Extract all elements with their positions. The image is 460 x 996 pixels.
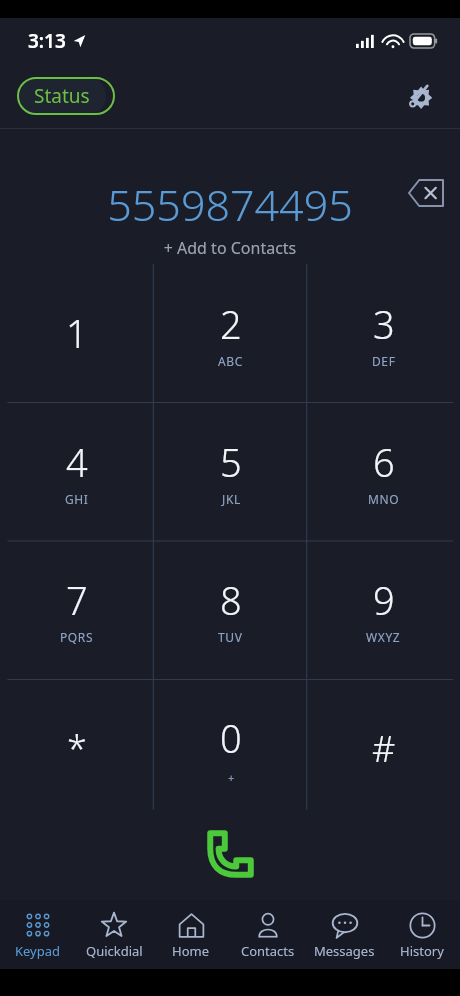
button[interactable]: Call [194,818,266,890]
button[interactable]: 0 [154,679,307,818]
button[interactable]: * [0,679,154,818]
staticText: 8 [220,574,242,626]
staticText: 3:13 [28,28,66,54]
button[interactable]: Messages [306,900,383,969]
staticText: Contacts [241,942,295,960]
button[interactable]: 7 [0,540,154,679]
staticText: 1 [66,307,88,359]
button[interactable]: 8 [154,540,307,679]
button[interactable]: 5 [154,402,307,540]
staticText: Status [34,83,90,109]
staticText: 7 [66,574,88,626]
staticText: WXYZ [366,629,401,645]
staticText: History [400,942,444,960]
staticText: 5 [220,436,242,488]
staticText: 4 [66,436,88,488]
staticText: 0 [220,712,242,764]
staticText: TUV [218,629,243,645]
staticText: # [372,724,396,773]
button[interactable]: Quickdial [76,900,152,969]
staticText: Keypad [15,942,61,960]
staticText: 6 [373,436,395,488]
staticText: JKL [222,491,241,507]
button[interactable]: Settings [398,74,442,118]
staticText: 2 [220,298,242,350]
button[interactable]: Home [152,900,229,969]
button[interactable]: 4 [0,402,154,540]
button[interactable]: 1 [0,264,154,402]
staticText: Quickdial [86,942,143,960]
staticText: 5559874495 [0,175,460,234]
button[interactable]: Backspace [402,169,450,217]
button[interactable]: History [383,900,460,969]
button[interactable]: 2 [154,264,307,402]
staticText: * [67,724,87,773]
staticText: + [228,770,235,785]
staticText: MNO [368,491,400,507]
button[interactable]: Keypad [0,900,76,969]
staticText: PQRS [60,629,94,645]
button[interactable]: Contacts [229,900,306,969]
button[interactable]: + Add to Contacts [0,237,460,259]
staticText: 3 [373,298,395,350]
button[interactable]: 9 [307,540,460,679]
staticText: 9 [373,574,395,626]
staticText: ABC [218,353,243,369]
staticText: DEF [372,353,396,369]
button[interactable]: Status [18,77,106,115]
button[interactable]: # [307,679,460,818]
staticText: Home [172,942,209,960]
button[interactable]: 6 [307,402,460,540]
staticText: Messages [314,942,375,960]
button[interactable]: 3 [307,264,460,402]
staticText: + Add to Contacts [0,237,460,259]
staticText: GHI [65,491,89,507]
